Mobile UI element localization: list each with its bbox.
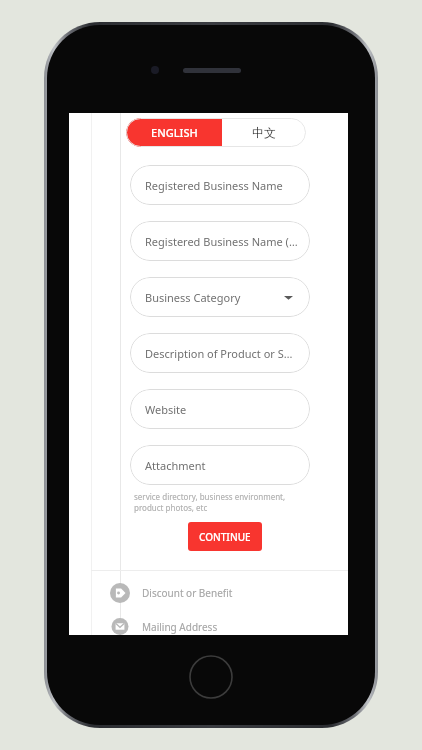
- button[interactable]: Business Category: [130, 277, 310, 317]
- staticText: Description of Product or Ser…: [145, 346, 298, 361]
- staticText: Registered Business Name: [145, 178, 283, 193]
- staticText: Discount or Benefit: [142, 586, 233, 600]
- button[interactable]: Discount or Benefit: [69, 582, 348, 604]
- staticText: Attachment: [145, 458, 206, 473]
- staticText: Website: [145, 402, 187, 417]
- button[interactable]: 中文: [222, 118, 306, 147]
- button[interactable]: Registered Business Name: [130, 165, 310, 205]
- staticText: Registered Business Name (…: [145, 234, 298, 249]
- staticText: service directory, business environment,: [134, 491, 286, 502]
- button[interactable]: Registered Business Name (…: [130, 221, 310, 261]
- button[interactable]: Description of Product or Ser…: [130, 333, 310, 373]
- staticText: 中文: [252, 125, 276, 140]
- staticText: ENGLISH: [151, 125, 198, 140]
- staticText: CONTINUE: [199, 530, 251, 544]
- staticText: product photos, etc: [134, 502, 208, 513]
- button[interactable]: Website: [130, 389, 310, 429]
- button[interactable]: Mailing Address: [69, 618, 348, 635]
- button[interactable]: Attachment: [130, 445, 310, 485]
- button[interactable]: ENGLISH: [126, 118, 222, 147]
- staticText: Business Category: [145, 290, 241, 305]
- button[interactable]: CONTINUE: [188, 522, 262, 551]
- staticText: Mailing Address: [142, 620, 218, 634]
